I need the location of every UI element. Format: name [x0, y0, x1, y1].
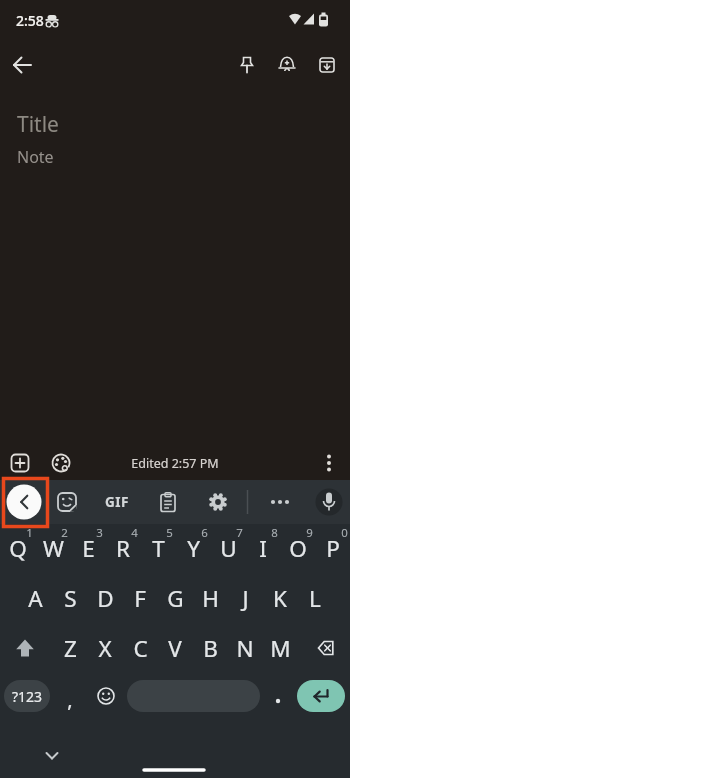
- button[interactable]: I: [223, 528, 303, 568]
- staticText: R: [116, 533, 130, 564]
- staticText: 6: [201, 525, 208, 541]
- staticText: S: [64, 583, 77, 614]
- staticText: D: [97, 583, 114, 614]
- button[interactable]: W: [13, 528, 93, 568]
- button[interactable]: [262, 680, 294, 712]
- button[interactable]: [200, 484, 236, 520]
- staticText: 2:58: [16, 11, 44, 30]
- button[interactable]: M: [240, 628, 320, 668]
- staticText: M: [270, 633, 291, 664]
- staticText: 1: [26, 525, 33, 541]
- button[interactable]: [4, 447, 36, 479]
- button[interactable]: V: [135, 628, 215, 668]
- button[interactable]: U: [188, 528, 268, 568]
- staticText: H: [202, 583, 219, 614]
- button[interactable]: [311, 484, 347, 520]
- button[interactable]: J: [205, 578, 285, 618]
- staticText: E: [82, 533, 95, 564]
- staticText: F: [134, 583, 146, 614]
- staticText: X: [98, 633, 112, 664]
- button[interactable]: Title: [17, 110, 217, 140]
- button[interactable]: R: [83, 528, 163, 568]
- staticText: U: [220, 533, 237, 564]
- staticText: V: [168, 633, 182, 664]
- button[interactable]: ?123: [4, 680, 50, 712]
- button[interactable]: ,: [30, 679, 110, 719]
- button[interactable]: B: [170, 628, 250, 668]
- staticText: Title: [17, 110, 59, 139]
- button[interactable]: [262, 484, 298, 520]
- button[interactable]: [150, 484, 186, 520]
- button[interactable]: [311, 49, 343, 81]
- staticText: L: [309, 583, 321, 614]
- button[interactable]: [271, 49, 303, 81]
- staticText: 0: [341, 525, 348, 541]
- staticText: 3: [96, 525, 103, 541]
- staticText: 2: [61, 525, 68, 541]
- staticText: B: [203, 633, 218, 664]
- button[interactable]: [90, 680, 122, 712]
- button[interactable]: N: [205, 628, 285, 668]
- button[interactable]: Y: [153, 528, 233, 568]
- button[interactable]: [36, 740, 68, 772]
- button[interactable]: F: [100, 578, 180, 618]
- staticText: W: [43, 533, 64, 564]
- button[interactable]: [8, 632, 42, 664]
- button[interactable]: [45, 447, 77, 479]
- button[interactable]: GIF: [77, 482, 157, 522]
- staticText: GIF: [105, 493, 129, 511]
- staticText: Z: [64, 633, 77, 664]
- button[interactable]: [127, 680, 260, 712]
- staticText: I: [259, 533, 267, 564]
- staticText: K: [273, 583, 287, 614]
- button[interactable]: L: [275, 578, 355, 618]
- staticText: P: [326, 533, 340, 564]
- button[interactable]: [49, 484, 85, 520]
- button[interactable]: [313, 447, 345, 479]
- staticText: C: [133, 633, 148, 664]
- button[interactable]: [6, 484, 42, 520]
- staticText: ?123: [12, 687, 43, 706]
- button[interactable]: [231, 49, 263, 81]
- button[interactable]: K: [240, 578, 320, 618]
- staticText: ,: [67, 686, 73, 713]
- staticText: Y: [187, 533, 200, 564]
- button[interactable]: O: [258, 528, 338, 568]
- button[interactable]: T: [118, 528, 198, 568]
- button[interactable]: E: [48, 528, 128, 568]
- button[interactable]: [308, 632, 342, 664]
- staticText: T: [152, 533, 165, 564]
- staticText: Note: [17, 146, 54, 168]
- staticText: 9: [306, 525, 313, 541]
- staticText: Q: [9, 533, 27, 564]
- button[interactable]: P: [293, 528, 373, 568]
- staticText: 4: [131, 525, 138, 541]
- staticText: O: [289, 533, 307, 564]
- button[interactable]: G: [135, 578, 215, 618]
- staticText: G: [167, 583, 184, 614]
- button[interactable]: Z: [30, 628, 110, 668]
- button[interactable]: Q: [0, 528, 58, 568]
- button[interactable]: Note: [17, 146, 217, 170]
- button[interactable]: S: [30, 578, 110, 618]
- staticText: 7: [236, 525, 243, 541]
- button[interactable]: [297, 680, 345, 712]
- staticText: 8: [271, 525, 278, 541]
- button[interactable]: [6, 49, 38, 81]
- button[interactable]: X: [65, 628, 145, 668]
- button[interactable]: A: [0, 578, 75, 618]
- button[interactable]: H: [170, 578, 250, 618]
- staticText: 5: [166, 525, 173, 541]
- staticText: Edited 2:57 PM: [131, 455, 219, 472]
- staticText: A: [28, 583, 43, 614]
- staticText: N: [236, 633, 254, 664]
- button[interactable]: C: [100, 628, 180, 668]
- staticText: J: [242, 583, 249, 614]
- button[interactable]: D: [65, 578, 145, 618]
